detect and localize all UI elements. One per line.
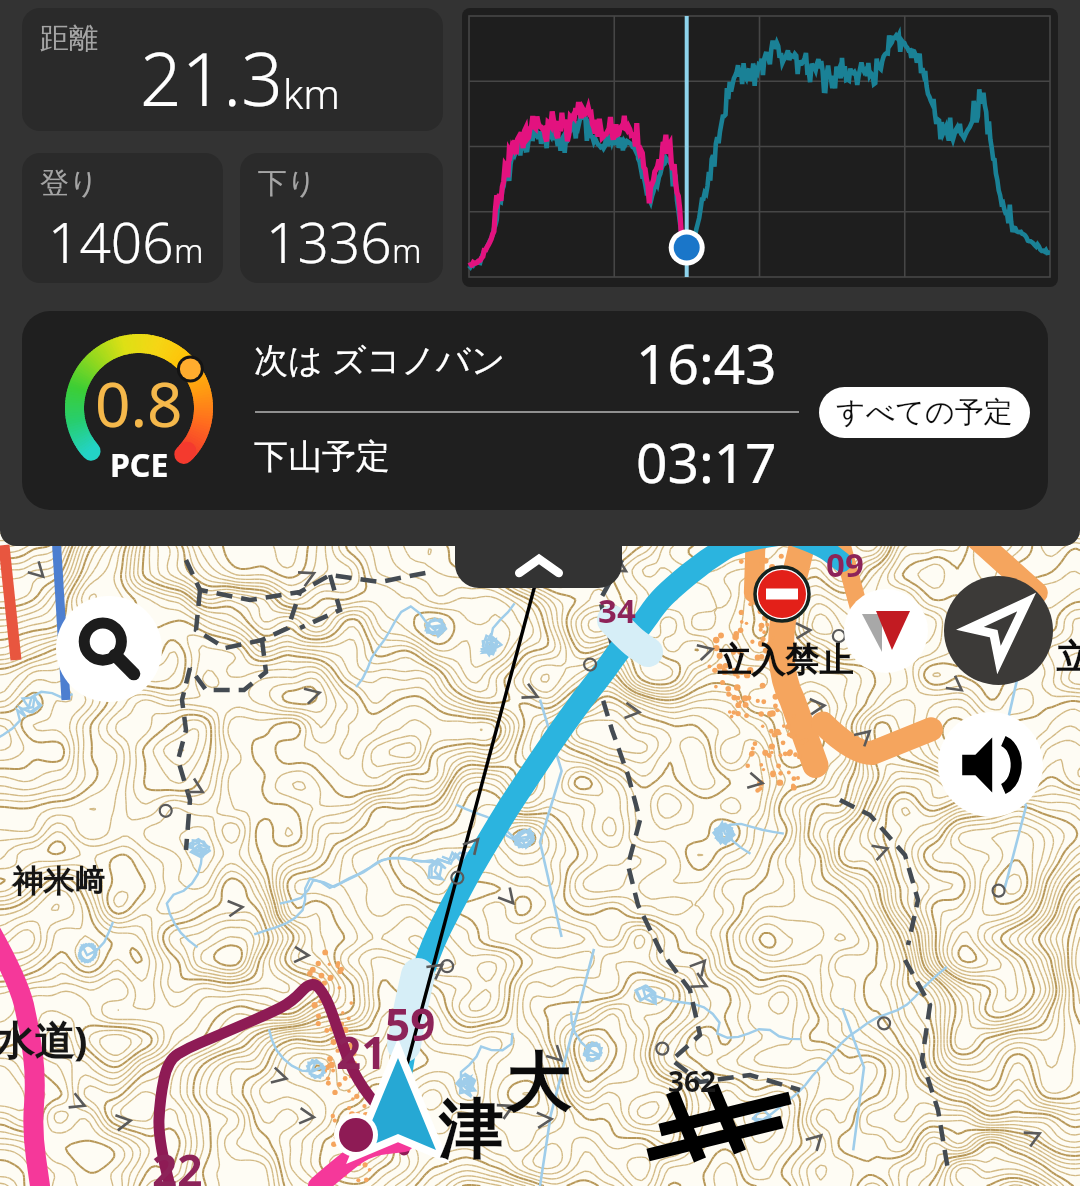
- staticText: 大: [506, 1043, 570, 1124]
- staticText: 神米﨑: [12, 862, 105, 901]
- button[interactable]: 下り: [240, 153, 443, 283]
- staticText: 0.8: [95, 361, 183, 445]
- button[interactable]: Elevation profile: [462, 8, 1058, 287]
- staticText: 登り: [40, 165, 99, 202]
- staticText: m: [174, 228, 204, 273]
- staticText: km: [283, 65, 340, 121]
- staticText: 59: [385, 994, 436, 1054]
- staticText: 距離: [40, 20, 98, 57]
- staticText: 次は ズコノバン: [254, 336, 506, 382]
- staticText: 34: [598, 588, 636, 633]
- button[interactable]: Search: [56, 596, 162, 702]
- button[interactable]: Collapse panel: [455, 538, 622, 588]
- staticText: 16:43: [636, 325, 777, 400]
- button[interactable]: 登り: [22, 153, 223, 283]
- staticText: 1336: [266, 204, 392, 279]
- button[interactable]: Sound: [938, 712, 1043, 817]
- staticText: 362: [668, 1062, 717, 1100]
- staticText: 水道): [0, 1012, 88, 1067]
- staticText: 立: [1056, 636, 1080, 679]
- staticText: 09: [826, 542, 864, 587]
- staticText: すべての予定: [836, 394, 1013, 431]
- staticText: 下山予定: [254, 435, 390, 478]
- button[interactable]: すべての予定: [819, 387, 1030, 438]
- staticText: 下り: [258, 165, 317, 202]
- staticText: 立入禁止: [717, 639, 853, 682]
- staticText: 22: [152, 1140, 203, 1186]
- button[interactable]: Compass: [844, 589, 928, 673]
- staticText: 津: [438, 1090, 502, 1171]
- staticText: 21.3: [140, 28, 283, 127]
- button[interactable]: 距離: [22, 8, 443, 131]
- button[interactable]: My location: [944, 576, 1053, 685]
- staticText: 1406: [48, 204, 174, 279]
- staticText: 21: [336, 1022, 387, 1082]
- staticText: m: [392, 228, 422, 273]
- staticText: 03:17: [636, 424, 777, 499]
- staticText: PCE: [110, 443, 169, 487]
